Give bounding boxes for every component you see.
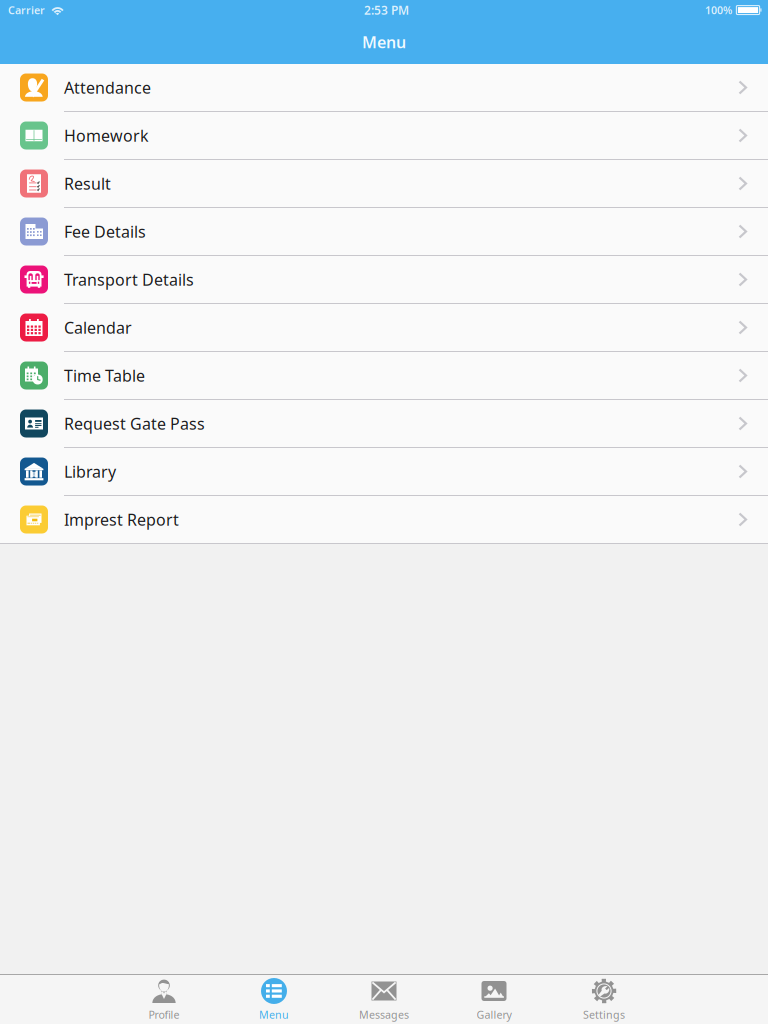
staticText: Gallery (476, 1007, 511, 1022)
staticText: Profile (148, 1007, 179, 1022)
button[interactable]: Calendar (0, 304, 768, 352)
button[interactable]: Settings (549, 975, 659, 1024)
button[interactable]: Menu (219, 975, 329, 1024)
staticText: Messages (359, 1007, 409, 1022)
staticText: Carrier (8, 3, 45, 17)
staticText: Calendar (64, 317, 132, 338)
staticText: Settings (583, 1007, 625, 1022)
button[interactable]: Messages (329, 975, 439, 1024)
staticText: Request Gate Pass (64, 413, 205, 434)
button[interactable]: Fee Details (0, 208, 768, 256)
button[interactable]: Transport Details (0, 256, 768, 304)
staticText: Result (64, 173, 111, 194)
staticText: Time Table (64, 365, 145, 386)
staticText: 2:53 PM (364, 2, 409, 18)
staticText: Transport Details (64, 269, 194, 290)
staticText: Menu (259, 1007, 289, 1022)
staticText: Imprest Report (64, 509, 179, 530)
staticText: 100% (705, 3, 732, 17)
button[interactable]: Result (0, 160, 768, 208)
button[interactable]: Request Gate Pass (0, 400, 768, 448)
button[interactable]: Attendance (0, 64, 768, 112)
button[interactable]: Time Table (0, 352, 768, 400)
staticText: Library (64, 461, 116, 482)
staticText: Menu (362, 31, 406, 53)
button[interactable]: Library (0, 448, 768, 496)
staticText: Attendance (64, 77, 151, 98)
button[interactable]: Profile (109, 975, 219, 1024)
button[interactable]: Imprest Report (0, 496, 768, 544)
button[interactable]: Gallery (439, 975, 549, 1024)
button[interactable]: Homework (0, 112, 768, 160)
staticText: Homework (64, 125, 149, 146)
staticText: Fee Details (64, 221, 146, 242)
